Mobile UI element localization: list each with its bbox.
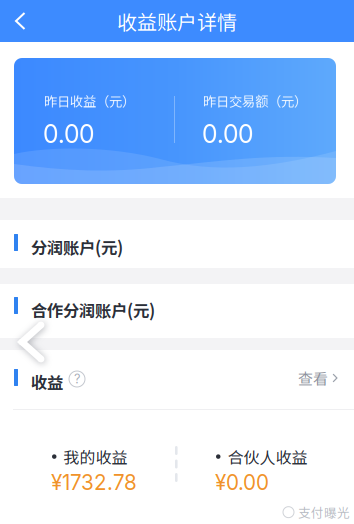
staticText: 支付曝光 [298,503,350,521]
staticText: 我的收益 [63,445,127,468]
button[interactable]: 合作分润账户(元) [0,284,354,338]
staticText: ? [74,371,80,387]
staticText: 昨日收益（元） [44,91,135,110]
staticText: 收益账户详情 [117,6,237,35]
staticText: 合伙人收益 [227,445,307,468]
button[interactable]: 返回 [0,0,48,42]
button[interactable]: 分润账户(元) [0,220,354,268]
staticText: 合作分润账户(元) [31,298,155,322]
staticText: 查看 [298,367,328,389]
staticText: 收益 [31,370,63,394]
staticText: 0.00 [43,119,94,149]
staticText: ¥1732.78 [51,470,137,495]
button[interactable]: 说明 [69,371,85,387]
staticText: ¥0.00 [215,470,269,495]
staticText: 0.00 [202,119,253,149]
staticText: 昨日交易额（元） [203,91,307,110]
button[interactable]: 查看 [292,358,354,398]
staticText: 分润账户(元) [31,235,123,259]
